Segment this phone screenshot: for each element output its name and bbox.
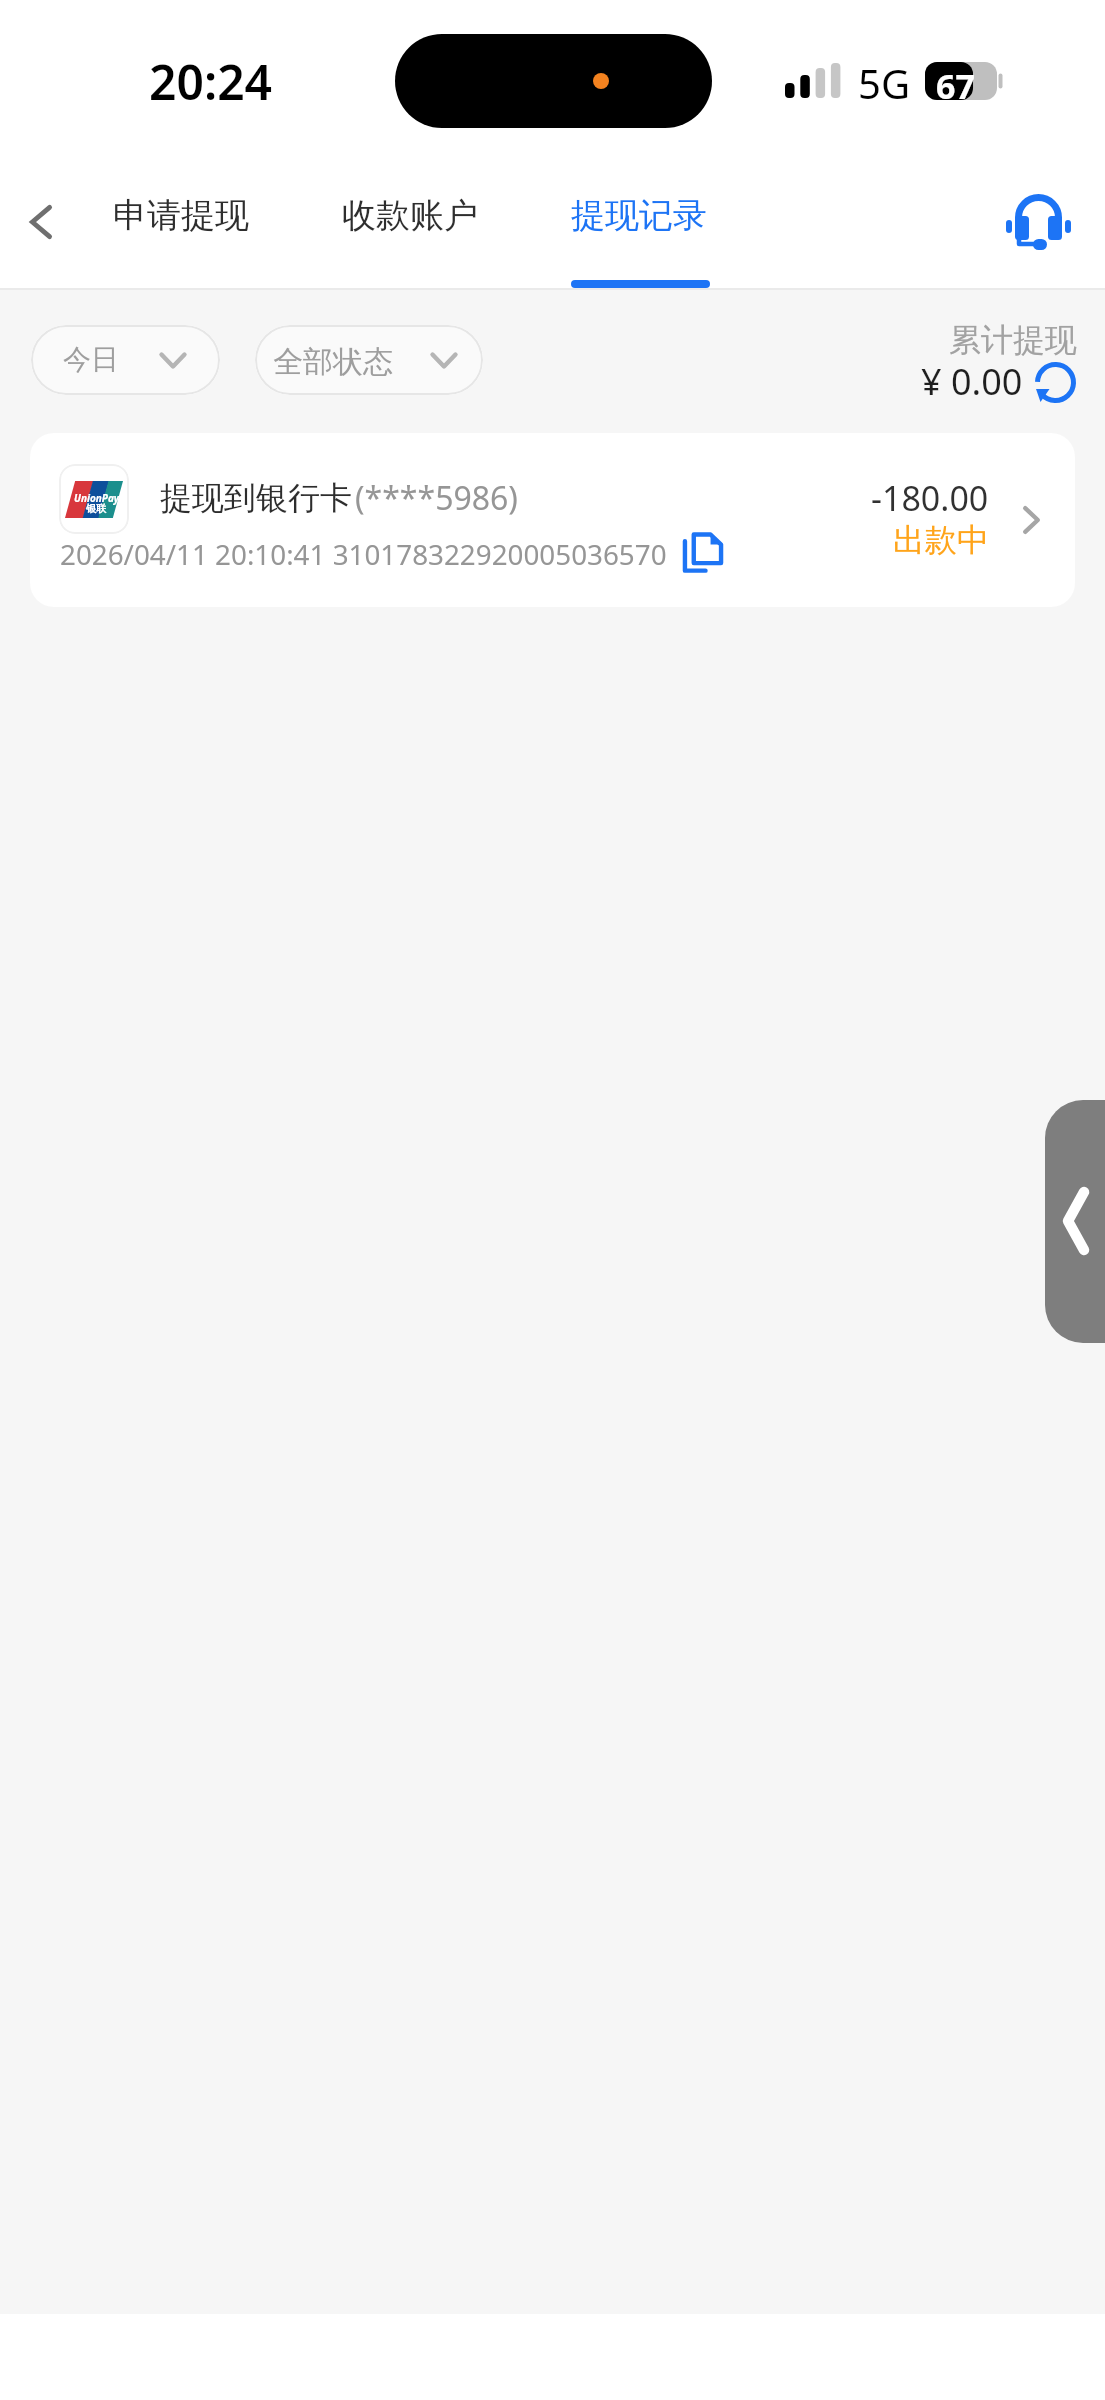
- button[interactable]: 收款账户: [318, 161, 499, 288]
- button[interactable]: Copy: [674, 524, 732, 582]
- staticText: (****5986): [355, 476, 518, 520]
- staticText: 收款账户: [342, 194, 478, 237]
- button[interactable]: Refresh: [1027, 354, 1083, 410]
- button[interactable]: 今日: [31, 325, 220, 395]
- staticText: 20:24: [149, 49, 273, 114]
- staticText: -180.00: [871, 475, 989, 521]
- staticText: UnionPay: [74, 491, 120, 505]
- button[interactable]: 申请提现: [89, 161, 270, 288]
- button[interactable]: Customer service: [975, 161, 1105, 288]
- staticText: 申请提现: [113, 194, 249, 237]
- staticText: 5G: [858, 56, 910, 110]
- staticText: 银联: [86, 502, 106, 515]
- staticText: 今日: [63, 342, 119, 377]
- staticText: 出款中: [893, 520, 989, 560]
- staticText: 提现记录: [571, 194, 707, 237]
- button[interactable]: Back: [0, 161, 92, 288]
- staticText: ¥ 0.00: [921, 357, 1023, 406]
- button[interactable]: 提现记录: [547, 161, 728, 288]
- staticText: 全部状态: [273, 343, 393, 381]
- staticText: 提现到银行卡: [160, 478, 352, 518]
- button[interactable]: UnionPay: [30, 433, 1075, 607]
- button[interactable]: 全部状态: [255, 325, 483, 395]
- staticText: 累计提现: [949, 320, 1077, 360]
- button[interactable]: Expand panel: [1045, 1100, 1105, 1343]
- staticText: 2026/04/11 20:10:41 31017832292000503657…: [60, 535, 667, 573]
- staticText: 67: [936, 63, 975, 101]
